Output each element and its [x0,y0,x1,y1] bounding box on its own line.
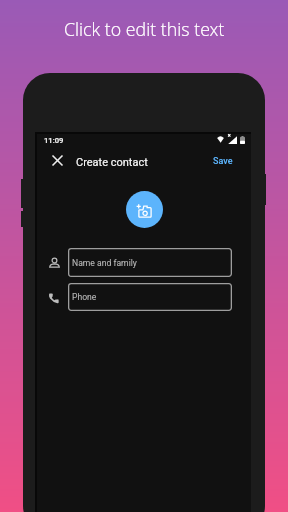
staticText: 11:09 [44,136,64,145]
button[interactable]: Phone [68,283,232,311]
button[interactable]: Add photo [126,191,163,228]
staticText: Click to edit this text [64,17,225,41]
staticText: Create contact [76,156,148,169]
staticText: Save [213,156,233,167]
button[interactable]: Close [46,149,69,172]
staticText: Name and family [72,258,137,268]
button[interactable]: Click to edit this text [0,17,288,41]
button[interactable]: Name and family [68,248,232,277]
staticText: Phone [72,292,97,302]
button[interactable]: Save [206,150,239,173]
